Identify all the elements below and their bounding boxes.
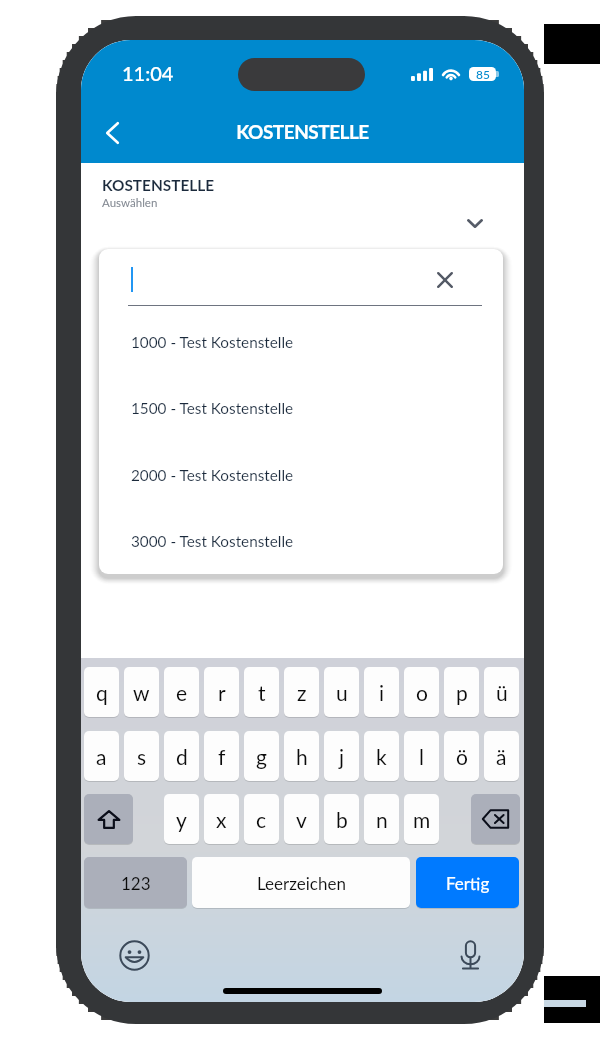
button[interactable]: w <box>124 667 159 717</box>
button[interactable]: Dictation <box>454 939 486 971</box>
staticText: k <box>376 744 387 769</box>
staticText: g <box>256 744 267 769</box>
button[interactable]: Fertig <box>416 857 519 908</box>
staticText: o <box>416 680 428 705</box>
button[interactable]: Backspace <box>471 794 520 844</box>
staticText: Auswählen <box>102 196 158 210</box>
button[interactable]: k <box>364 731 399 781</box>
button[interactable]: x <box>204 794 239 844</box>
staticText: t <box>258 680 266 705</box>
staticText: h <box>296 744 308 769</box>
staticText: u <box>336 680 348 705</box>
staticText: Fertig <box>446 873 490 893</box>
button[interactable]: 1500 - Test Kostenstelle <box>99 386 503 430</box>
button[interactable]: Shift <box>84 794 133 844</box>
button[interactable]: 3000 - Test Kostenstelle <box>99 519 503 563</box>
staticText: w <box>133 680 150 705</box>
button[interactable]: p <box>444 667 479 717</box>
button[interactable]: ä <box>484 731 519 781</box>
staticText: ö <box>456 744 468 769</box>
button[interactable]: 1000 - Test Kostenstelle <box>99 320 503 364</box>
button[interactable]: h <box>284 731 319 781</box>
button[interactable]: t <box>244 667 279 717</box>
button[interactable]: Back <box>89 110 135 156</box>
button[interactable]: a <box>84 731 119 781</box>
staticText: 1000 - Test Kostenstelle <box>131 333 294 351</box>
staticText: n <box>376 807 388 832</box>
staticText: KOSTENSTELLE <box>102 176 215 194</box>
button[interactable]: Emoji keyboard <box>118 939 150 971</box>
staticText: ü <box>496 680 508 705</box>
button[interactable]: y <box>164 794 199 844</box>
button[interactable]: s <box>124 731 159 781</box>
button[interactable]: z <box>284 667 319 717</box>
staticText: v <box>296 807 307 832</box>
staticText: j <box>339 744 345 769</box>
staticText: a <box>96 744 107 769</box>
staticText: Leerzeichen <box>257 873 346 893</box>
staticText: c <box>256 807 267 832</box>
button[interactable]: c <box>244 794 279 844</box>
staticText: m <box>413 807 431 832</box>
staticText: y <box>176 807 187 832</box>
staticText: 2000 - Test Kostenstelle <box>131 466 294 484</box>
button[interactable]: j <box>324 731 359 781</box>
button[interactable]: ü <box>484 667 519 717</box>
button[interactable]: n <box>364 794 399 844</box>
button[interactable]: Expand dropdown <box>453 201 497 245</box>
staticText: 85 <box>476 67 490 81</box>
button[interactable]: Clear <box>423 258 467 302</box>
button[interactable]: b <box>324 794 359 844</box>
button[interactable]: m <box>404 794 439 844</box>
button[interactable]: 123 <box>84 857 187 908</box>
staticText: s <box>137 744 147 769</box>
button[interactable]: v <box>284 794 319 844</box>
staticText: d <box>176 744 188 769</box>
staticText: 3000 - Test Kostenstelle <box>131 532 294 550</box>
staticText: 1500 - Test Kostenstelle <box>131 399 294 417</box>
staticText: i <box>379 680 385 705</box>
staticText: z <box>297 680 307 705</box>
staticText: x <box>216 807 227 832</box>
button[interactable]: 2000 - Test Kostenstelle <box>99 453 503 497</box>
staticText: 123 <box>121 873 151 893</box>
button[interactable]: r <box>204 667 239 717</box>
button[interactable]: u <box>324 667 359 717</box>
button[interactable]: o <box>404 667 439 717</box>
staticText: p <box>456 680 468 705</box>
staticText: r <box>218 680 226 705</box>
staticText: q <box>96 680 108 705</box>
staticText: l <box>419 744 424 769</box>
button[interactable]: Leerzeichen <box>192 857 410 908</box>
button[interactable]: e <box>164 667 199 717</box>
button[interactable]: d <box>164 731 199 781</box>
staticText: f <box>218 744 226 769</box>
staticText: KOSTENSTELLE <box>81 120 524 143</box>
button[interactable]: l <box>404 731 439 781</box>
staticText: b <box>336 807 348 832</box>
button[interactable]: ö <box>444 731 479 781</box>
staticText: ä <box>496 744 507 769</box>
button[interactable]: g <box>244 731 279 781</box>
button[interactable]: i <box>364 667 399 717</box>
staticText: e <box>176 680 188 705</box>
button[interactable]: f <box>204 731 239 781</box>
staticText: 11:04 <box>122 61 174 85</box>
button[interactable]: q <box>84 667 119 717</box>
